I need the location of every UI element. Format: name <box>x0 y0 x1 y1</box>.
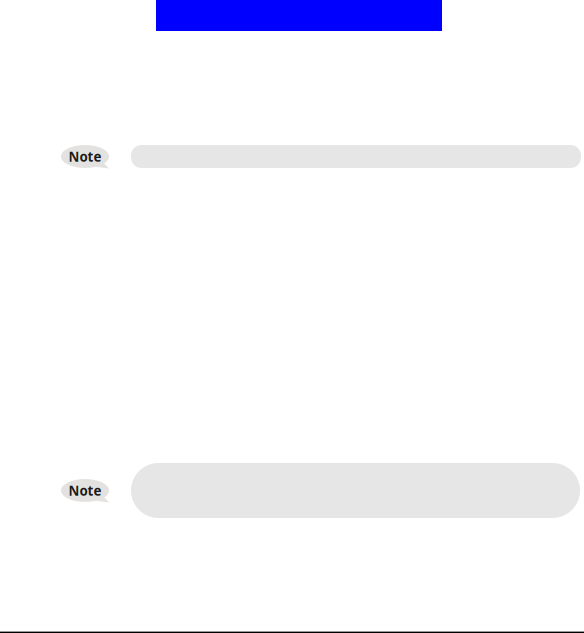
button[interactable]: Note <box>61 479 113 506</box>
button[interactable]: Note <box>61 145 113 172</box>
staticText: Note <box>68 148 101 165</box>
staticText: Note <box>68 482 101 499</box>
